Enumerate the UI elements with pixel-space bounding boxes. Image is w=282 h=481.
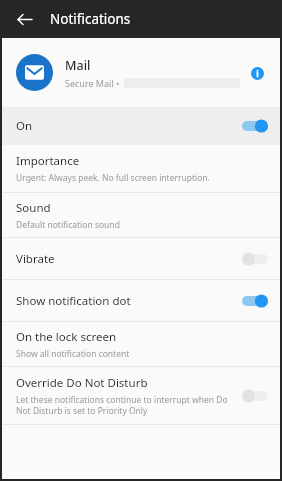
button[interactable]: Mail <box>2 38 280 107</box>
staticText: On the lock screen <box>16 329 117 345</box>
staticText: Let these notifications continue to inte… <box>16 394 234 416</box>
button[interactable]: Sound <box>2 193 280 237</box>
staticText: Vibrate <box>16 251 240 267</box>
button[interactable]: Importance <box>2 145 280 192</box>
staticText: Mail <box>65 57 91 74</box>
button[interactable]: Vibrate <box>2 238 280 279</box>
staticText: Sound <box>16 200 51 216</box>
staticText: Show notification dot <box>16 293 240 309</box>
button[interactable]: On the lock screen <box>2 322 280 366</box>
staticText: Show all notification content <box>16 348 130 360</box>
staticText: On <box>16 118 240 134</box>
staticText: Notifications <box>50 10 131 28</box>
staticText: Default notification sound <box>16 219 120 231</box>
button[interactable]: Override Do Not Disturb <box>2 367 280 424</box>
button[interactable]: On <box>2 107 280 145</box>
button[interactable]: App info <box>244 60 270 86</box>
button[interactable]: Show notification dot <box>2 280 280 321</box>
staticText: Secure Mail • <box>65 77 120 89</box>
staticText: Override Do Not Disturb <box>16 375 148 391</box>
button[interactable]: Back <box>9 4 39 34</box>
staticText: Importance <box>16 153 80 169</box>
staticText: Urgent: Always peek. No full screen inte… <box>16 172 210 184</box>
